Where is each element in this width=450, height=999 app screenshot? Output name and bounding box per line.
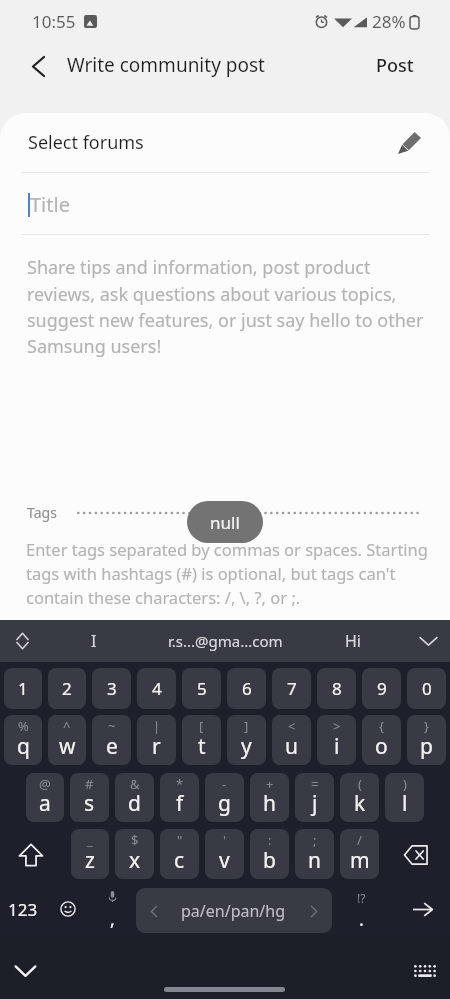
button[interactable]: ': [205, 829, 244, 879]
staticText: c: [174, 846, 185, 875]
button[interactable]: ;: [295, 829, 334, 879]
button[interactable]: 123: [0, 885, 47, 935]
button[interactable]: [: [182, 715, 221, 765]
staticText: 9: [377, 677, 387, 700]
staticText: x: [129, 846, 141, 875]
button[interactable]: |: [137, 715, 176, 765]
staticText: 0: [422, 677, 432, 700]
button[interactable]: Voice input: [91, 885, 133, 935]
staticText: -: [222, 775, 227, 793]
staticText: <: [288, 717, 296, 735]
staticText: ': [223, 831, 226, 849]
button[interactable]: 9: [362, 668, 401, 709]
button[interactable]: -: [205, 773, 244, 822]
button[interactable]: Hide keyboard: [5, 951, 45, 991]
button[interactable]: (: [340, 773, 379, 822]
button[interactable]: ~: [92, 715, 131, 765]
staticText: l: [402, 789, 408, 818]
button[interactable]: Edit: [392, 126, 426, 160]
staticText: u: [285, 732, 298, 761]
button[interactable]: @: [26, 773, 64, 822]
button[interactable]: 3: [92, 668, 131, 709]
staticText: .: [359, 907, 364, 932]
button[interactable]: ]: [227, 715, 266, 765]
button[interactable]: 7: [272, 668, 311, 709]
button[interactable]: $: [115, 829, 154, 879]
staticText: ": [177, 831, 183, 849]
staticText: 7: [287, 677, 297, 700]
button[interactable]: {: [362, 715, 401, 765]
button[interactable]: %: [4, 715, 42, 765]
staticText: t: [198, 732, 206, 761]
staticText: 4: [152, 677, 162, 700]
button[interactable]: Expand toolbar: [0, 620, 45, 662]
button[interactable]: I: [58, 620, 130, 662]
button[interactable]: 8: [317, 668, 356, 709]
button[interactable]: Emoji: [44, 885, 91, 935]
staticText: (: [358, 775, 362, 793]
staticText: Share tips and information, post product…: [27, 255, 436, 358]
staticText: Select forums: [28, 130, 144, 155]
button[interactable]: =: [295, 773, 334, 822]
staticText: >: [333, 717, 341, 735]
button[interactable]: pa/en/pan/hg: [136, 888, 332, 933]
staticText: Hi: [345, 630, 361, 652]
staticText: pa/en/pan/hg: [181, 900, 286, 922]
button[interactable]: +: [250, 773, 289, 822]
staticText: *: [176, 775, 184, 793]
button[interactable]: 4: [137, 668, 176, 709]
button[interactable]: ): [385, 773, 424, 822]
button[interactable]: ^: [48, 715, 86, 765]
staticText: [: [199, 717, 204, 735]
button[interactable]: 0: [407, 668, 446, 709]
staticText: |: [153, 717, 161, 735]
staticText: Title: [30, 191, 70, 218]
button[interactable]: /: [340, 829, 379, 879]
button[interactable]: ": [160, 829, 199, 879]
staticText: 1: [18, 677, 28, 700]
staticText: h: [263, 789, 276, 818]
button[interactable]: r.s...@gma...com: [155, 620, 296, 662]
staticText: @: [39, 775, 51, 793]
staticText: i: [334, 732, 340, 761]
staticText: a: [39, 789, 51, 818]
button[interactable]: 2: [48, 668, 86, 709]
button[interactable]: <: [272, 715, 311, 765]
staticText: 8: [332, 677, 342, 700]
button[interactable]: #: [70, 773, 109, 822]
button[interactable]: Select forums: [0, 113, 450, 172]
button[interactable]: Backspace: [382, 829, 450, 879]
button[interactable]: More suggestions: [406, 620, 450, 662]
staticText: 10:55: [32, 10, 76, 33]
button[interactable]: Post: [366, 45, 424, 86]
button[interactable]: }: [407, 715, 446, 765]
staticText: Post: [376, 53, 414, 78]
button[interactable]: Shift: [0, 829, 62, 879]
staticText: 28%: [372, 10, 406, 33]
staticText: Tags: [27, 503, 57, 522]
button[interactable]: !?: [340, 885, 382, 935]
button[interactable]: Hi: [313, 620, 393, 662]
button[interactable]: 5: [182, 668, 221, 709]
staticText: g: [218, 789, 231, 818]
button[interactable]: Enter: [395, 885, 450, 935]
staticText: /: [357, 831, 362, 849]
staticText: 3: [107, 677, 117, 700]
button[interactable]: 6: [227, 668, 266, 709]
staticText: ~: [108, 717, 116, 735]
button[interactable]: 1: [4, 668, 42, 709]
button[interactable]: Back: [18, 46, 58, 86]
button[interactable]: _: [71, 829, 109, 879]
staticText: q: [17, 732, 30, 761]
button[interactable]: Choose input method: [405, 951, 445, 991]
staticText: j: [312, 789, 318, 818]
button[interactable]: *: [160, 773, 199, 822]
staticText: b: [263, 846, 276, 875]
staticText: w: [59, 732, 76, 761]
staticText: ): [403, 775, 407, 793]
button[interactable]: :: [250, 829, 289, 879]
staticText: 6: [242, 677, 252, 700]
button[interactable]: &: [115, 773, 154, 822]
staticText: y: [241, 732, 252, 761]
button[interactable]: >: [317, 715, 356, 765]
